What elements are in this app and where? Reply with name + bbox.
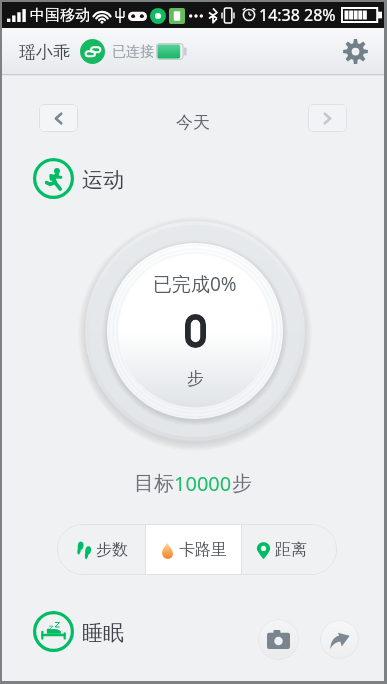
staticText: 运动 — [82, 167, 124, 193]
staticText: 睡眠 — [82, 620, 124, 646]
staticText: 14:38 — [259, 4, 300, 26]
staticText: 步数 — [96, 540, 128, 560]
button[interactable]: Camera — [258, 619, 299, 660]
button[interactable]: 卡路里 — [146, 524, 241, 575]
button[interactable]: 步数 — [57, 524, 145, 575]
staticText: 今天 — [176, 112, 210, 133]
staticText: 中国移动 — [30, 6, 90, 25]
staticText: 步 — [187, 368, 204, 389]
staticText: 卡路里 — [179, 540, 227, 560]
button[interactable]: 运动 — [33, 157, 124, 199]
staticText: 10000 — [174, 470, 232, 497]
button[interactable]: Previous day — [39, 104, 78, 132]
staticText: 28% — [304, 4, 336, 26]
button[interactable]: Settings — [338, 34, 372, 68]
button[interactable]: 距离 — [242, 524, 336, 575]
staticText: 目标 — [134, 471, 174, 496]
staticText: 瑶小乖 — [19, 42, 70, 63]
button[interactable]: Share — [320, 620, 359, 659]
button[interactable]: 睡眠 — [33, 610, 124, 652]
staticText: 距离 — [275, 540, 307, 560]
staticText: 已完成0% — [153, 271, 237, 297]
staticText: 步 — [232, 471, 252, 496]
button[interactable]: Next day — [308, 104, 347, 132]
staticText: 已连接 — [112, 43, 154, 61]
